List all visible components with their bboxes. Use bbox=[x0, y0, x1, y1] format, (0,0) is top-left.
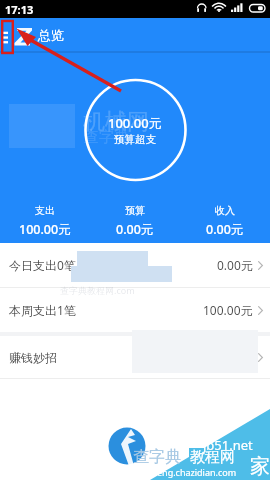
button[interactable]: Open navigation menu bbox=[0, 18, 18, 52]
button[interactable]: 赚钱妙招 bbox=[0, 336, 270, 378]
staticText: 查字典 bbox=[84, 128, 129, 147]
staticText: 今日支出0笔 bbox=[9, 257, 76, 273]
staticText: 预算超支 bbox=[114, 133, 156, 146]
staticText: jiaocheng.chazidian.com bbox=[132, 466, 237, 478]
staticText: 赚钱妙招 bbox=[9, 350, 57, 365]
button[interactable]: 支出 bbox=[0, 204, 90, 238]
button[interactable]: 本周支出1笔 bbox=[0, 288, 270, 332]
staticText: 0.00元 bbox=[217, 257, 253, 273]
staticText: 100.00元 bbox=[108, 114, 162, 132]
staticText: 本周支出1笔 bbox=[9, 302, 76, 318]
staticText: 100.00元 bbox=[19, 221, 71, 238]
staticText: jb51.net bbox=[203, 436, 253, 454]
button[interactable]: 收入 bbox=[180, 204, 270, 238]
staticText: 0.00元 bbox=[116, 221, 154, 238]
button[interactable]: 预算 bbox=[90, 204, 180, 238]
staticText: 预算 bbox=[125, 204, 145, 217]
staticText: 查字典 bbox=[133, 447, 181, 467]
button[interactable]: 今日支出0笔 bbox=[0, 243, 270, 287]
staticText: 教程网 bbox=[190, 448, 235, 467]
staticText: 100.00元 bbox=[203, 302, 253, 318]
staticText: 0.00元 bbox=[206, 221, 244, 238]
staticText: 收入 bbox=[215, 204, 235, 217]
staticText: 机械网 bbox=[83, 108, 149, 136]
staticText: 17:13 bbox=[5, 2, 34, 17]
staticText: 查字典教程网.com bbox=[60, 284, 135, 296]
staticText: 总览 bbox=[38, 27, 64, 43]
staticText: 支出 bbox=[35, 204, 55, 217]
staticText: 家 bbox=[250, 454, 270, 479]
